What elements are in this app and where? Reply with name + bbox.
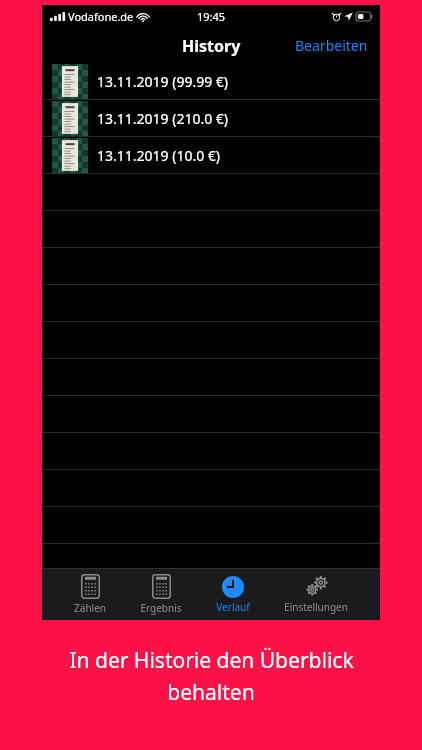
staticText: behalten (167, 678, 255, 707)
button[interactable]: Einstellungen (282, 569, 350, 620)
staticText: 13.11.2019 (210.0 €) (97, 109, 229, 128)
button[interactable]: Zählen (72, 569, 108, 620)
button[interactable]: 13.11.2019 (210.0 €) (42, 100, 380, 136)
button[interactable]: Ergebnis (138, 569, 184, 620)
button[interactable]: 13.11.2019 (10.0 €) (42, 137, 380, 173)
staticText: Ergebnis (140, 601, 182, 615)
staticText: Vodafone.de (68, 9, 134, 24)
button[interactable]: Verlauf (214, 569, 252, 620)
staticText: 13.11.2019 (99.99 €) (97, 72, 229, 91)
staticText: History (182, 35, 241, 57)
staticText: 19:45 (197, 9, 226, 24)
staticText: 13.11.2019 (10.0 €) (97, 146, 221, 165)
button[interactable]: 13.11.2019 (99.99 €) (42, 63, 380, 99)
staticText: Zählen (74, 601, 106, 615)
button[interactable]: Bearbeiten (283, 29, 380, 62)
staticText: Verlauf (216, 600, 250, 614)
staticText: Bearbeiten (295, 36, 368, 55)
staticText: In der Historie den Überblick (69, 646, 354, 675)
staticText: Einstellungen (284, 600, 348, 614)
